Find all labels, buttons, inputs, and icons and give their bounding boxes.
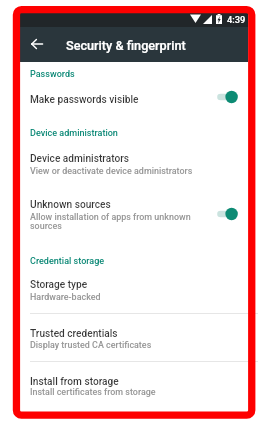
staticText: Install from storage — [30, 376, 119, 388]
staticText: Storage type — [30, 279, 88, 291]
staticText: Make passwords visible — [30, 94, 139, 106]
staticText: Device administrators — [30, 153, 129, 165]
staticText: sources — [30, 221, 62, 231]
button[interactable] — [20, 361, 248, 405]
staticText: Install certificates from storage — [30, 387, 156, 397]
button[interactable] — [20, 63, 248, 115]
staticText: Hardware-backed — [30, 292, 101, 302]
staticText: View or deactivate device administrators — [30, 166, 193, 176]
staticText: Trusted credentials — [30, 328, 118, 340]
staticText: Allow installation of apps from unknown — [30, 212, 191, 222]
staticText: Unknown sources — [30, 199, 111, 211]
staticText: Passwords — [30, 69, 75, 80]
button[interactable]: Toggle — [216, 207, 238, 221]
staticText: Device administration — [30, 128, 118, 139]
staticText: Security & fingerprint — [66, 38, 186, 53]
staticText: 4:39 — [227, 14, 246, 25]
button[interactable] — [20, 268, 248, 313]
button[interactable]: Back — [25, 32, 49, 56]
button[interactable] — [20, 313, 248, 361]
staticText: Credential storage — [30, 256, 105, 267]
button[interactable] — [20, 186, 248, 240]
staticText: Display trusted CA certificates — [30, 340, 152, 350]
button[interactable]: Toggle — [216, 90, 238, 104]
button[interactable] — [20, 142, 248, 182]
